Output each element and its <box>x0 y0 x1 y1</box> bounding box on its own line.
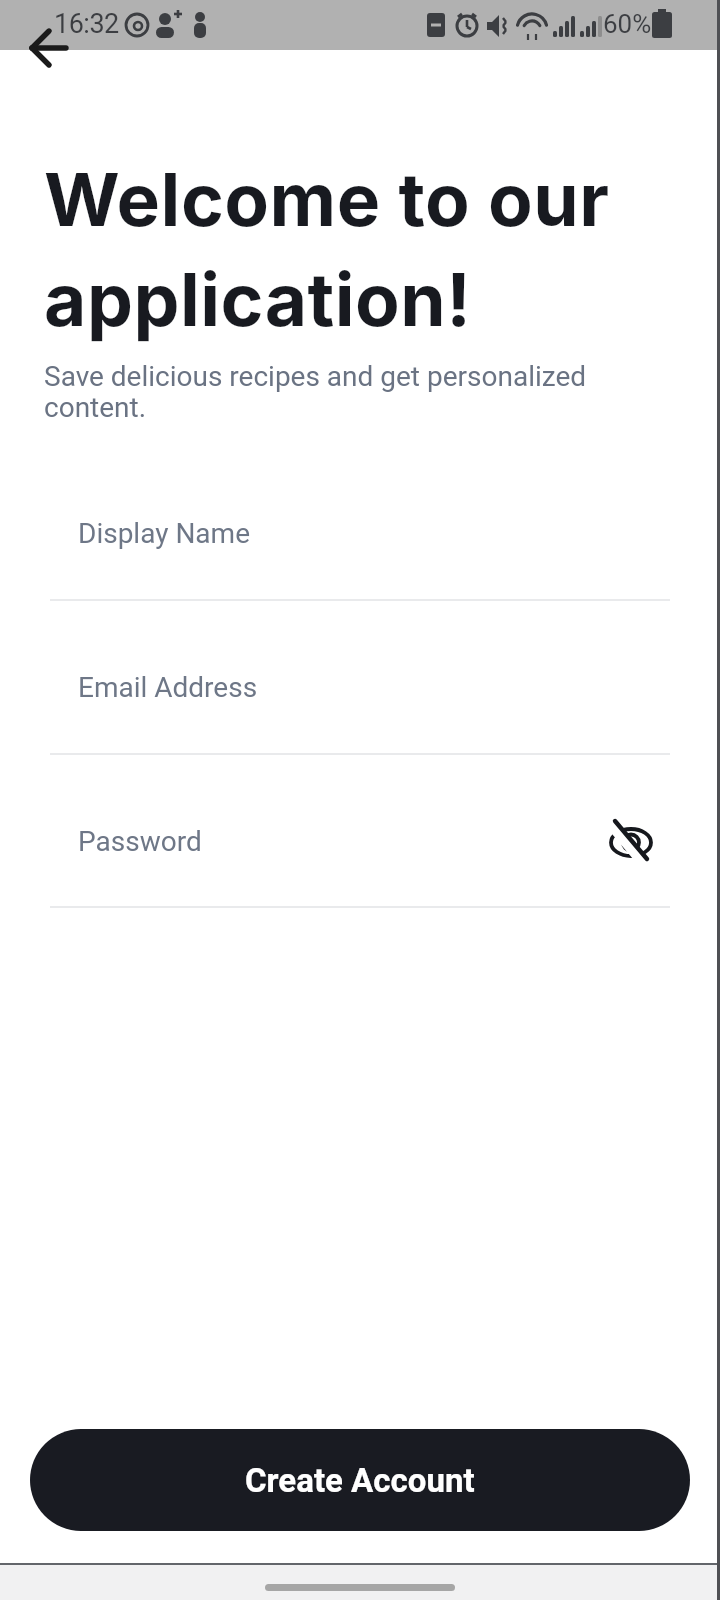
staticText: Password <box>78 825 202 858</box>
button[interactable]: Password <box>50 793 670 889</box>
staticText: Display Name <box>78 517 250 550</box>
button[interactable]: Display Name <box>50 485 670 581</box>
staticText: Save delicious recipes and get personali… <box>44 360 587 423</box>
staticText: 16:32 <box>54 8 119 40</box>
staticText: 60% <box>603 9 652 39</box>
staticText: Create Account <box>245 1461 475 1500</box>
button[interactable] <box>608 817 656 865</box>
button[interactable]: Create Account <box>30 1429 690 1531</box>
button[interactable] <box>18 16 82 80</box>
staticText: Welcome to our application! <box>44 155 610 344</box>
button[interactable]: Email Address <box>50 639 670 735</box>
staticText: Email Address <box>78 671 258 704</box>
